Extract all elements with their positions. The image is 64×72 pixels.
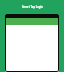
staticText: Smart Tap Login bbox=[22, 5, 43, 9]
